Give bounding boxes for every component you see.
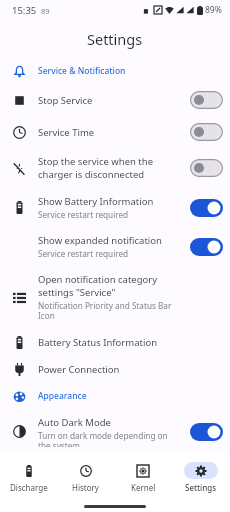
staticText: Show expanded notification bbox=[38, 234, 162, 247]
staticText: 89% bbox=[205, 4, 222, 16]
staticText: Settings bbox=[87, 29, 143, 49]
staticText: History bbox=[72, 482, 99, 493]
staticText: Service & Notification bbox=[38, 65, 126, 77]
staticText: Service restart required bbox=[38, 209, 129, 220]
button[interactable]: Battery Status Information bbox=[0, 329, 230, 356]
staticText: 89 bbox=[41, 6, 50, 16]
button[interactable]: Off bbox=[190, 159, 223, 177]
staticText: Power Connection bbox=[38, 363, 120, 376]
staticText: Settings bbox=[185, 482, 217, 493]
button[interactable]: Off bbox=[190, 91, 223, 109]
button[interactable]: Show expanded notification bbox=[0, 227, 230, 266]
staticText: Appearance bbox=[38, 390, 87, 402]
staticText: Stop the service when the charger is dis… bbox=[38, 155, 176, 181]
button[interactable]: Kernel bbox=[114, 454, 172, 500]
button[interactable]: Power Connection bbox=[0, 356, 230, 383]
button[interactable]: Discharge bbox=[0, 454, 57, 500]
button[interactable]: Open notification category settings "Ser… bbox=[0, 266, 230, 329]
staticText: Show Battery Information bbox=[38, 195, 154, 208]
button[interactable]: Settings bbox=[172, 454, 230, 500]
staticText: Kernel bbox=[131, 482, 156, 493]
button[interactable]: History bbox=[57, 454, 114, 500]
button[interactable]: Show Battery Information bbox=[0, 188, 230, 227]
staticText: Service Time bbox=[38, 126, 95, 139]
staticText: Service restart required bbox=[38, 248, 129, 259]
button[interactable]: On bbox=[190, 423, 223, 441]
button[interactable]: Service Time bbox=[0, 116, 230, 148]
button[interactable]: Stop the service when the charger is dis… bbox=[0, 148, 230, 188]
button[interactable]: On bbox=[190, 238, 223, 256]
staticText: 15:35 bbox=[12, 4, 37, 17]
staticText: Battery Status Information bbox=[38, 336, 157, 349]
button[interactable]: On bbox=[190, 199, 223, 217]
button[interactable]: Off bbox=[190, 123, 223, 141]
staticText: Discharge bbox=[10, 482, 48, 493]
staticText: Notification Priority and Status Bar Ico… bbox=[38, 300, 176, 322]
button[interactable]: Auto Dark Mode bbox=[0, 409, 230, 454]
button[interactable]: Stop Service bbox=[0, 84, 230, 116]
staticText: Open notification category settings "Ser… bbox=[38, 273, 176, 299]
staticText: Auto Dark Mode bbox=[38, 416, 111, 429]
staticText: Turn on dark mode depending on the syste… bbox=[38, 430, 176, 447]
staticText: Stop Service bbox=[38, 94, 93, 107]
